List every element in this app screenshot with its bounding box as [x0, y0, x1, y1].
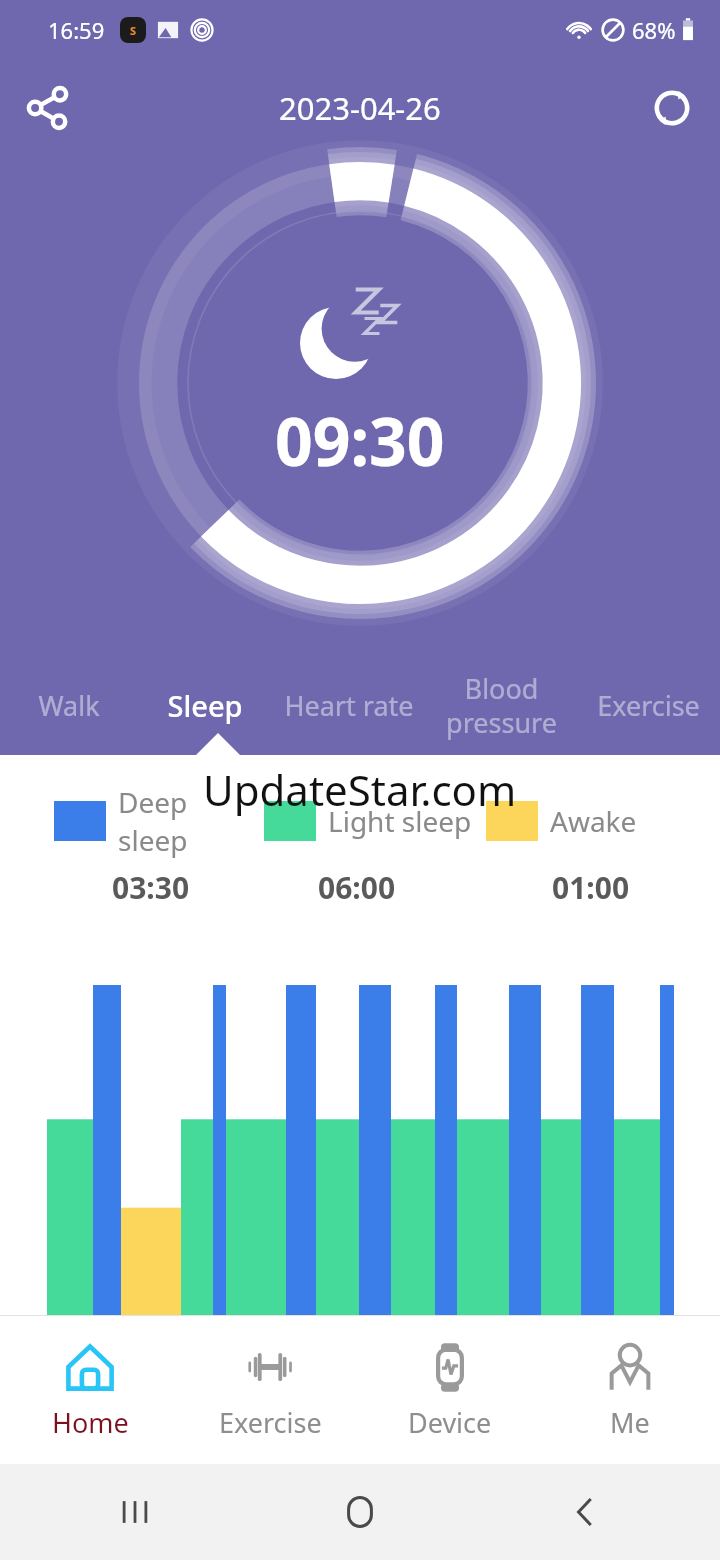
button[interactable]: Walk — [0, 655, 137, 755]
staticText: Walk — [38, 687, 100, 724]
staticText: Device — [408, 1404, 492, 1441]
staticText: Heart rate — [284, 687, 414, 724]
button[interactable]: Awake — [480, 801, 720, 841]
staticText: 09:30 — [275, 395, 445, 485]
button[interactable]: Home — [0, 1316, 180, 1464]
button[interactable]: Light sleep — [240, 801, 480, 841]
button[interactable]: Share — [14, 74, 82, 142]
staticText: 2023-04-26 — [279, 87, 441, 129]
staticText: 08:30 — [636, 1330, 706, 1367]
button[interactable]: Heart rate — [273, 655, 425, 755]
staticText: S — [130, 23, 137, 38]
button[interactable]: Refresh — [638, 74, 706, 142]
button[interactable]: Blood pressure — [425, 655, 577, 755]
staticText: Awake — [550, 802, 637, 840]
staticText: 68% — [632, 15, 676, 45]
button[interactable]: Back — [550, 1477, 620, 1547]
button[interactable]: Recents — [100, 1477, 170, 1547]
staticText: 06:00 — [318, 867, 396, 908]
button[interactable]: Exercise — [577, 655, 720, 755]
staticText: 01:00 — [552, 867, 630, 908]
button[interactable]: Device — [360, 1316, 540, 1464]
staticText: UpdateStar.com — [203, 761, 517, 818]
button[interactable]: Deep sleep — [0, 783, 240, 859]
staticText: Sleep — [167, 686, 243, 725]
staticText: Deep sleep — [118, 783, 240, 859]
staticText: Light sleep — [328, 802, 472, 840]
staticText: 03:30 — [112, 867, 190, 908]
button[interactable]: Sleep — [137, 655, 273, 755]
staticText: Exercise — [597, 687, 700, 724]
button[interactable]: Exercise — [180, 1316, 360, 1464]
staticText: Exercise — [219, 1404, 322, 1441]
staticText: 22:00 — [14, 1330, 84, 1367]
button[interactable]: Me — [540, 1316, 720, 1464]
staticText: Me — [610, 1404, 650, 1441]
staticText: 16:59 — [48, 15, 105, 45]
button[interactable]: Home — [325, 1477, 395, 1547]
staticText: Blood pressure — [446, 670, 557, 741]
staticText: Home — [52, 1404, 129, 1441]
